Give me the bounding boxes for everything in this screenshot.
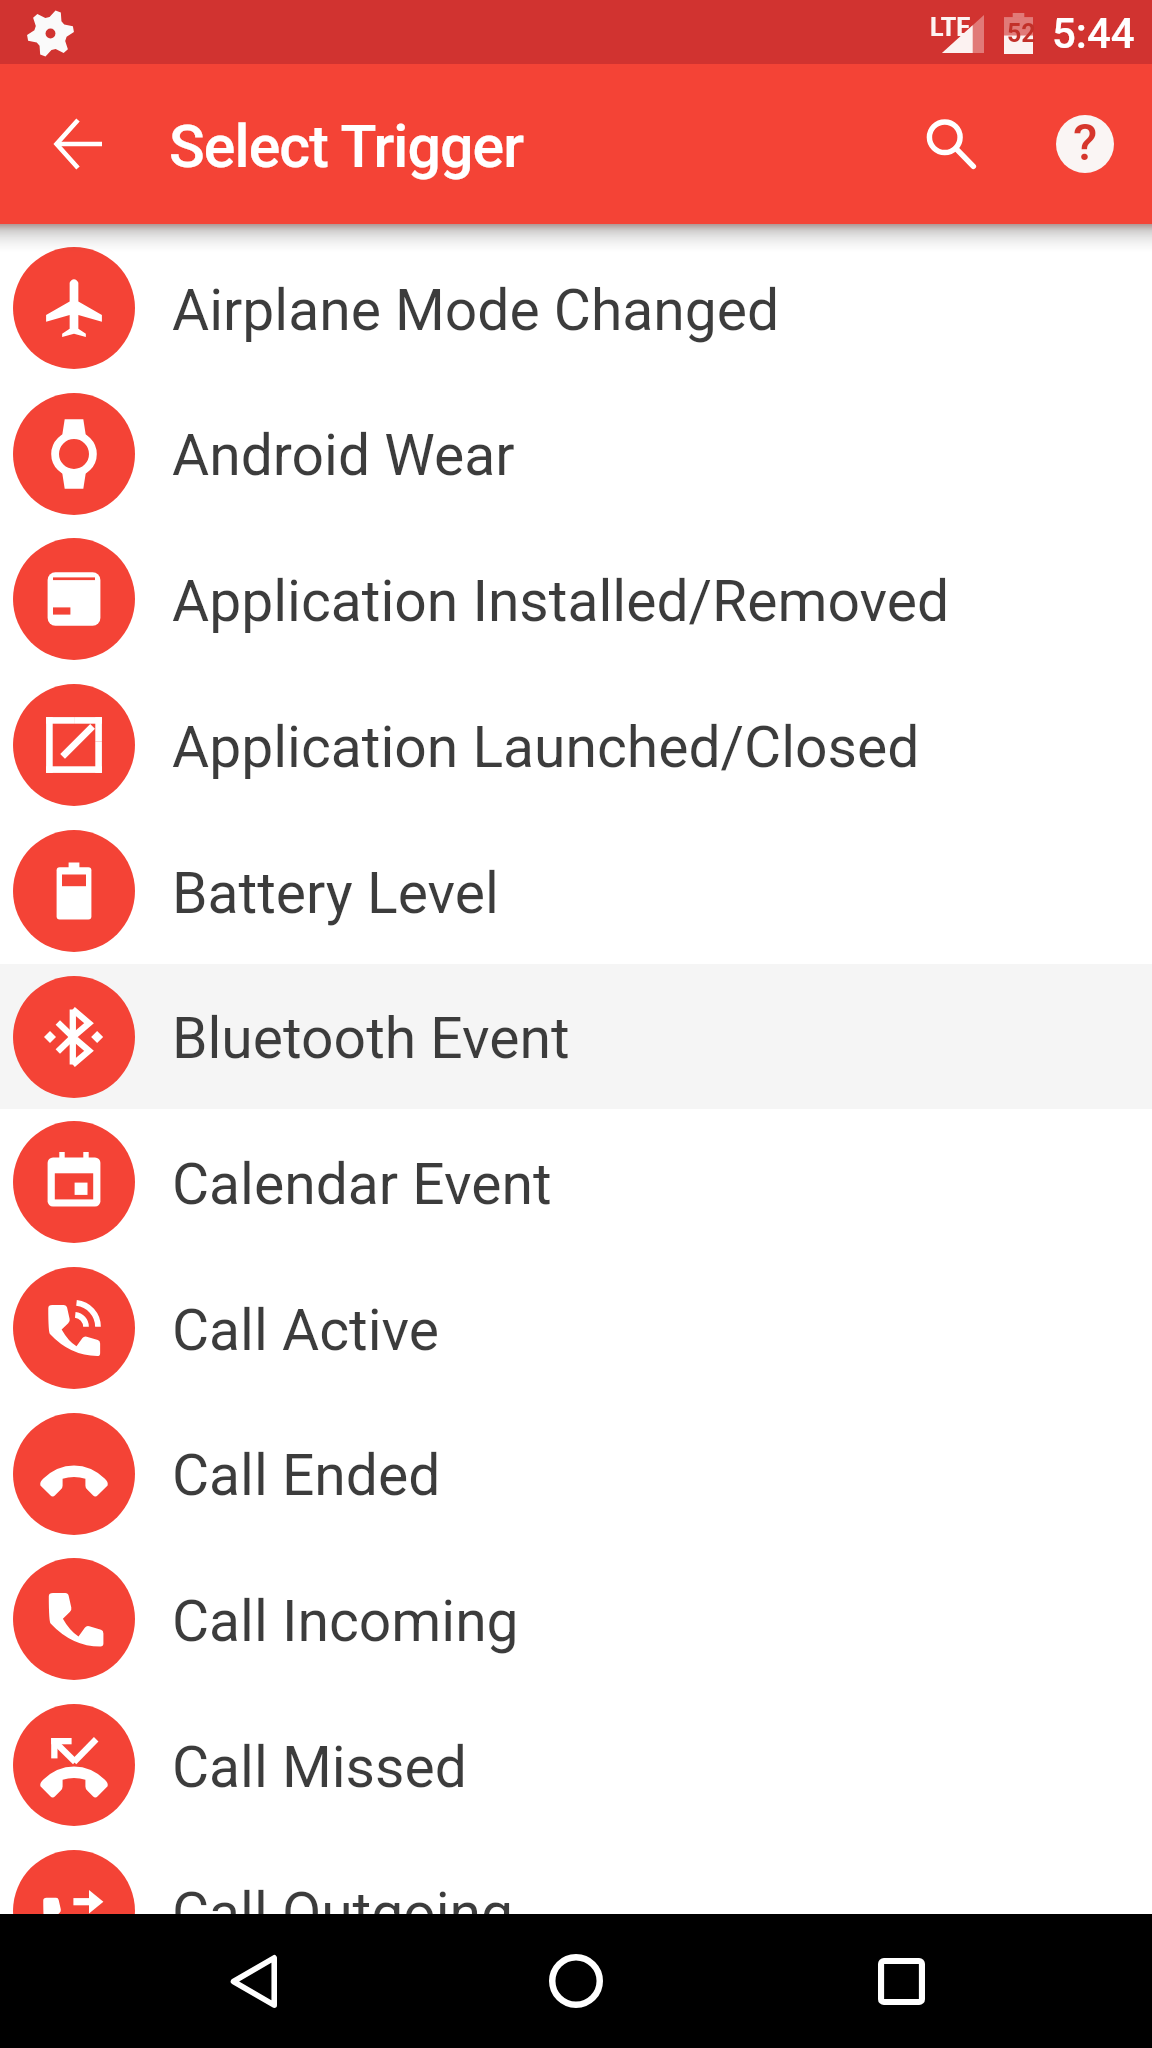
- staticText: Calendar Event: [172, 1151, 552, 1218]
- staticText: Battery Level: [172, 860, 499, 927]
- button[interactable]: Application Launched/Closed: [0, 672, 1152, 818]
- button[interactable]: Recents: [831, 1914, 971, 2048]
- button[interactable]: Call Outgoing: [0, 1838, 1152, 1984]
- button[interactable]: Call Missed: [0, 1692, 1152, 1838]
- staticText: Application Launched/Closed: [172, 714, 920, 781]
- staticText: Application Installed/Removed: [172, 568, 950, 635]
- staticText: Call Ended: [172, 1442, 441, 1509]
- button[interactable]: Bluetooth Event: [0, 964, 1152, 1109]
- staticText: 52: [1007, 19, 1036, 48]
- staticText: 5:44: [1052, 9, 1135, 58]
- staticText: ?: [1073, 115, 1098, 172]
- staticText: Airplane Mode Changed: [172, 277, 780, 344]
- staticText: Call Outgoing: [172, 1880, 514, 1947]
- button[interactable]: Call Incoming: [0, 1546, 1152, 1692]
- staticText: Call Incoming: [172, 1588, 519, 1655]
- button[interactable]: Help: [1033, 92, 1137, 196]
- staticText: Call Missed: [172, 1734, 467, 1801]
- staticText: Android Wear: [172, 422, 515, 489]
- button[interactable]: Call Active: [0, 1255, 1152, 1401]
- staticText: Select Trigger: [169, 112, 524, 181]
- staticText: Bluetooth Event: [172, 1005, 570, 1072]
- button[interactable]: Calendar Event: [0, 1109, 1152, 1255]
- button[interactable]: Battery Level: [0, 818, 1152, 964]
- button[interactable]: Back: [26, 92, 130, 196]
- button[interactable]: Back: [183, 1914, 323, 2048]
- button[interactable]: Home: [506, 1914, 646, 2048]
- button[interactable]: Airplane Mode Changed: [0, 235, 1152, 381]
- button[interactable]: Application Installed/Removed: [0, 526, 1152, 672]
- staticText: LTE: [930, 13, 971, 42]
- button[interactable]: Android Wear: [0, 381, 1152, 526]
- button[interactable]: Call Ended: [0, 1401, 1152, 1546]
- staticText: Call Active: [172, 1297, 439, 1364]
- button[interactable]: Search: [899, 92, 1003, 196]
